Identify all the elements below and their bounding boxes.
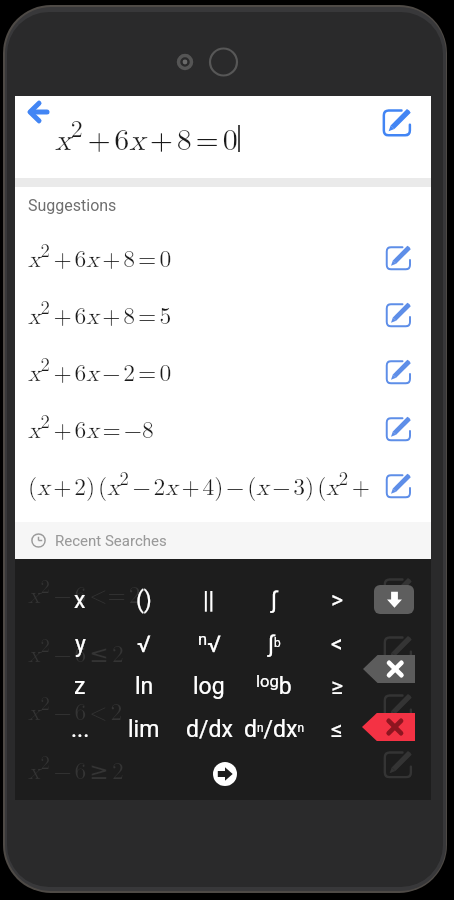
- staticText: x2 + 6x + 8 = 5: [28, 293, 172, 331]
- button[interactable]: y: [49, 625, 111, 663]
- button[interactable]: n√: [178, 625, 240, 663]
- button[interactable]: ≤: [306, 710, 368, 748]
- button[interactable]: logb: [243, 667, 305, 705]
- staticText: x2 − 6 < 2: [28, 689, 123, 727]
- staticText: z: [74, 673, 86, 700]
- button[interactable]: Backspace: [363, 655, 415, 683]
- staticText: ...: [71, 716, 90, 743]
- staticText: lim: [128, 716, 160, 743]
- button[interactable]: log: [178, 667, 240, 705]
- button[interactable]: ≥: [306, 667, 368, 705]
- staticText: ∫b: [268, 631, 281, 658]
- staticText: x2 + 6x + 8 = 0: [28, 236, 172, 274]
- staticText: ≥: [331, 673, 344, 700]
- button[interactable]: z: [49, 667, 111, 705]
- staticText: d/dx: [186, 716, 233, 743]
- staticText: x2 − 6 ≤ 2: [28, 631, 124, 669]
- button[interactable]: Hide keyboard: [374, 585, 414, 614]
- staticText: x2 − 6 <= 2: [28, 572, 141, 610]
- button[interactable]: ln: [113, 667, 175, 705]
- staticText: logb: [256, 672, 292, 700]
- button[interactable]: ∫b: [243, 625, 305, 663]
- button[interactable]: x2 + 6x + 8 = 0: [15, 229, 431, 286]
- staticText: √: [137, 631, 151, 658]
- button[interactable]: ...: [49, 710, 111, 748]
- staticText: n√: [198, 630, 221, 658]
- staticText: >: [331, 587, 344, 614]
- staticText: x2 + 6x = −8: [28, 407, 154, 445]
- button[interactable]: Edit query: [377, 102, 417, 142]
- staticText: x2 − 6 ≥ 2: [28, 748, 124, 786]
- staticText: Recent Searches: [55, 532, 167, 550]
- button[interactable]: <: [306, 625, 368, 663]
- staticText: dn/dxn: [244, 716, 305, 743]
- button[interactable]: x2 + 6x = −8: [15, 400, 431, 457]
- button[interactable]: Back: [18, 92, 58, 132]
- staticText: ||: [203, 587, 215, 614]
- staticText: Suggestions: [28, 196, 117, 215]
- button[interactable]: Recent Searches: [15, 522, 431, 559]
- staticText: x2 + 6x + 8 = 0: [55, 110, 238, 159]
- button[interactable]: x: [49, 581, 111, 619]
- button[interactable]: ||: [178, 581, 240, 619]
- button[interactable]: ∫: [243, 581, 305, 619]
- staticText: ∫: [271, 587, 277, 614]
- button[interactable]: x2 + 6x + 8 = 5: [15, 286, 431, 343]
- staticText: (x + 2) (x2 − 2x + 4) − (x − 3) (x2 +: [28, 464, 370, 502]
- staticText: (): [136, 587, 152, 614]
- button[interactable]: Submit: [213, 762, 237, 786]
- button[interactable]: x2 + 6x − 2 = 0: [15, 343, 431, 400]
- staticText: log: [193, 673, 225, 700]
- button[interactable]: (): [113, 581, 175, 619]
- staticText: ln: [135, 673, 154, 700]
- button[interactable]: Clear all: [362, 713, 415, 741]
- staticText: x2 + 6x − 2 = 0: [28, 350, 172, 388]
- staticText: y: [75, 631, 86, 658]
- staticText: x: [74, 587, 86, 614]
- button[interactable]: >: [306, 581, 368, 619]
- button[interactable]: (x + 2) (x2 − 2x + 4) − (x − 3) (x2 +: [15, 457, 431, 514]
- staticText: <: [331, 631, 343, 658]
- button[interactable]: √: [113, 625, 175, 663]
- staticText: ≤: [331, 716, 343, 743]
- button[interactable]: d/dx: [178, 710, 240, 748]
- button[interactable]: dn/dxn: [243, 710, 305, 748]
- button[interactable]: lim: [113, 710, 175, 748]
